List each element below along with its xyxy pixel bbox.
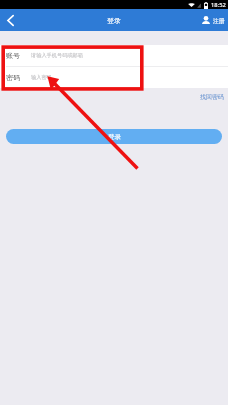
staticText: 登录 bbox=[108, 133, 121, 141]
button[interactable]: 找回密码 bbox=[199, 92, 225, 102]
staticText: 登录 bbox=[107, 16, 121, 25]
button[interactable]: 登录 bbox=[6, 129, 222, 144]
staticText: 18:52 bbox=[211, 1, 226, 9]
button[interactable]: 注册 bbox=[196, 16, 228, 24]
staticText: 账号 bbox=[6, 51, 20, 60]
staticText: 找回密码 bbox=[200, 93, 224, 101]
staticText: 请输入手机号码或邮箱 bbox=[31, 52, 83, 59]
button[interactable]: Back bbox=[0, 9, 21, 31]
staticText: 输入密码 bbox=[31, 74, 52, 81]
staticText: 注册 bbox=[213, 17, 225, 24]
staticText: 密码 bbox=[6, 73, 20, 82]
